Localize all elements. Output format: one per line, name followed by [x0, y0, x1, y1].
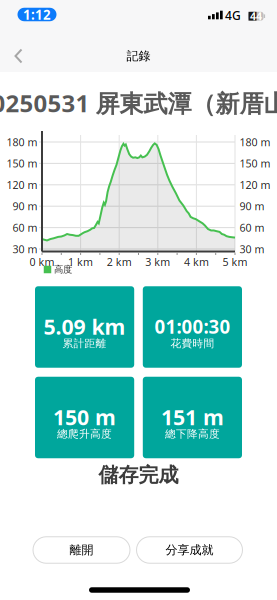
staticText: 5.09 km: [44, 312, 126, 341]
staticText: 20250531 屏東武潭（新厝山）: [0, 87, 277, 119]
staticText: 花費時間: [170, 337, 214, 350]
button[interactable]: 分享成就: [136, 537, 242, 563]
staticText: 90 m: [12, 199, 37, 213]
staticText: 150 m: [6, 156, 37, 170]
staticText: 1 km: [68, 255, 93, 269]
staticText: 4G: [225, 7, 241, 23]
staticText: 1:12: [23, 6, 51, 23]
staticText: 180 m: [6, 135, 37, 149]
staticText: 60 m: [12, 220, 37, 235]
staticText: 總下降高度: [165, 427, 220, 440]
staticText: 01:00:30: [154, 314, 230, 339]
staticText: 總爬升高度: [57, 427, 112, 440]
staticText: 30 m: [239, 242, 264, 256]
staticText: 分享成就: [165, 543, 213, 557]
staticText: 4 km: [184, 255, 209, 269]
staticText: 5 km: [222, 255, 247, 269]
staticText: 120 m: [239, 178, 270, 192]
staticText: 記錄: [126, 49, 150, 63]
staticText: 3 km: [145, 255, 170, 269]
staticText: 2 km: [107, 255, 132, 269]
staticText: 151 m: [161, 403, 224, 431]
staticText: 180 m: [239, 135, 270, 149]
staticText: 累計距離: [63, 337, 107, 350]
button[interactable]: 離開: [33, 537, 130, 563]
staticText: 30 m: [12, 242, 37, 256]
staticText: 0 km: [29, 255, 54, 269]
staticText: 44: [250, 9, 262, 23]
staticText: 150 m: [239, 156, 270, 170]
staticText: 60 m: [239, 220, 264, 235]
staticText: 離開: [69, 543, 93, 557]
staticText: 儲存完成: [98, 463, 178, 487]
staticText: 150 m: [53, 403, 116, 431]
staticText: 高度: [54, 264, 72, 275]
staticText: 90 m: [239, 199, 264, 213]
staticText: 120 m: [6, 178, 37, 192]
button[interactable]: [0, 0, 36, 44]
button[interactable]: 1:12: [17, 8, 56, 21]
